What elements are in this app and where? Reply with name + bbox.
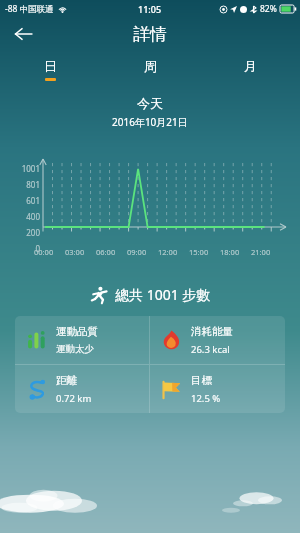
button[interactable]: Back bbox=[8, 19, 38, 49]
staticText: 消耗能量 bbox=[191, 325, 233, 338]
staticText: 月 bbox=[244, 58, 257, 74]
staticText: 1001 bbox=[21, 163, 40, 174]
button[interactable]: 月 bbox=[200, 54, 300, 85]
button[interactable]: 日 bbox=[0, 54, 100, 85]
staticText: 12.5 % bbox=[191, 392, 221, 405]
staticText: 26.3 kcal bbox=[191, 343, 230, 356]
button[interactable]: 周 bbox=[100, 54, 200, 85]
staticText: 日 bbox=[44, 58, 57, 74]
staticText: 00:00 bbox=[34, 247, 54, 257]
staticText: 21:00 bbox=[251, 247, 271, 257]
staticText: 0.72 km bbox=[56, 392, 92, 405]
button[interactable]: 目標 bbox=[150, 365, 285, 413]
staticText: 03:00 bbox=[65, 247, 85, 257]
staticText: 詳情 bbox=[133, 24, 167, 45]
staticText: 距離 bbox=[56, 374, 77, 387]
staticText: 今天 bbox=[137, 95, 163, 111]
staticText: 0 bbox=[35, 243, 40, 254]
staticText: 目標 bbox=[191, 374, 212, 387]
button[interactable]: 距離 bbox=[15, 365, 149, 413]
staticText: 總共 1001 步數 bbox=[115, 285, 211, 304]
staticText: 15:00 bbox=[189, 247, 209, 257]
staticText: 12:00 bbox=[158, 247, 178, 257]
staticText: 09:00 bbox=[127, 247, 147, 257]
staticText: 周 bbox=[144, 58, 157, 74]
staticText: 2016年10月21日 bbox=[112, 115, 188, 129]
staticText: 200 bbox=[26, 227, 40, 238]
staticText: 601 bbox=[26, 195, 40, 206]
button[interactable]: 消耗能量 bbox=[150, 316, 285, 364]
staticText: -88 中国联通 bbox=[5, 3, 54, 15]
staticText: 11:05 bbox=[138, 3, 162, 15]
staticText: 06:00 bbox=[96, 247, 116, 257]
staticText: 運動太少 bbox=[56, 343, 94, 355]
staticText: 82% bbox=[260, 3, 277, 15]
staticText: 18:00 bbox=[220, 247, 240, 257]
staticText: 801 bbox=[26, 179, 40, 190]
staticText: 運動品質 bbox=[56, 325, 98, 338]
button[interactable]: 運動品質 bbox=[15, 316, 149, 364]
staticText: 400 bbox=[26, 211, 40, 222]
